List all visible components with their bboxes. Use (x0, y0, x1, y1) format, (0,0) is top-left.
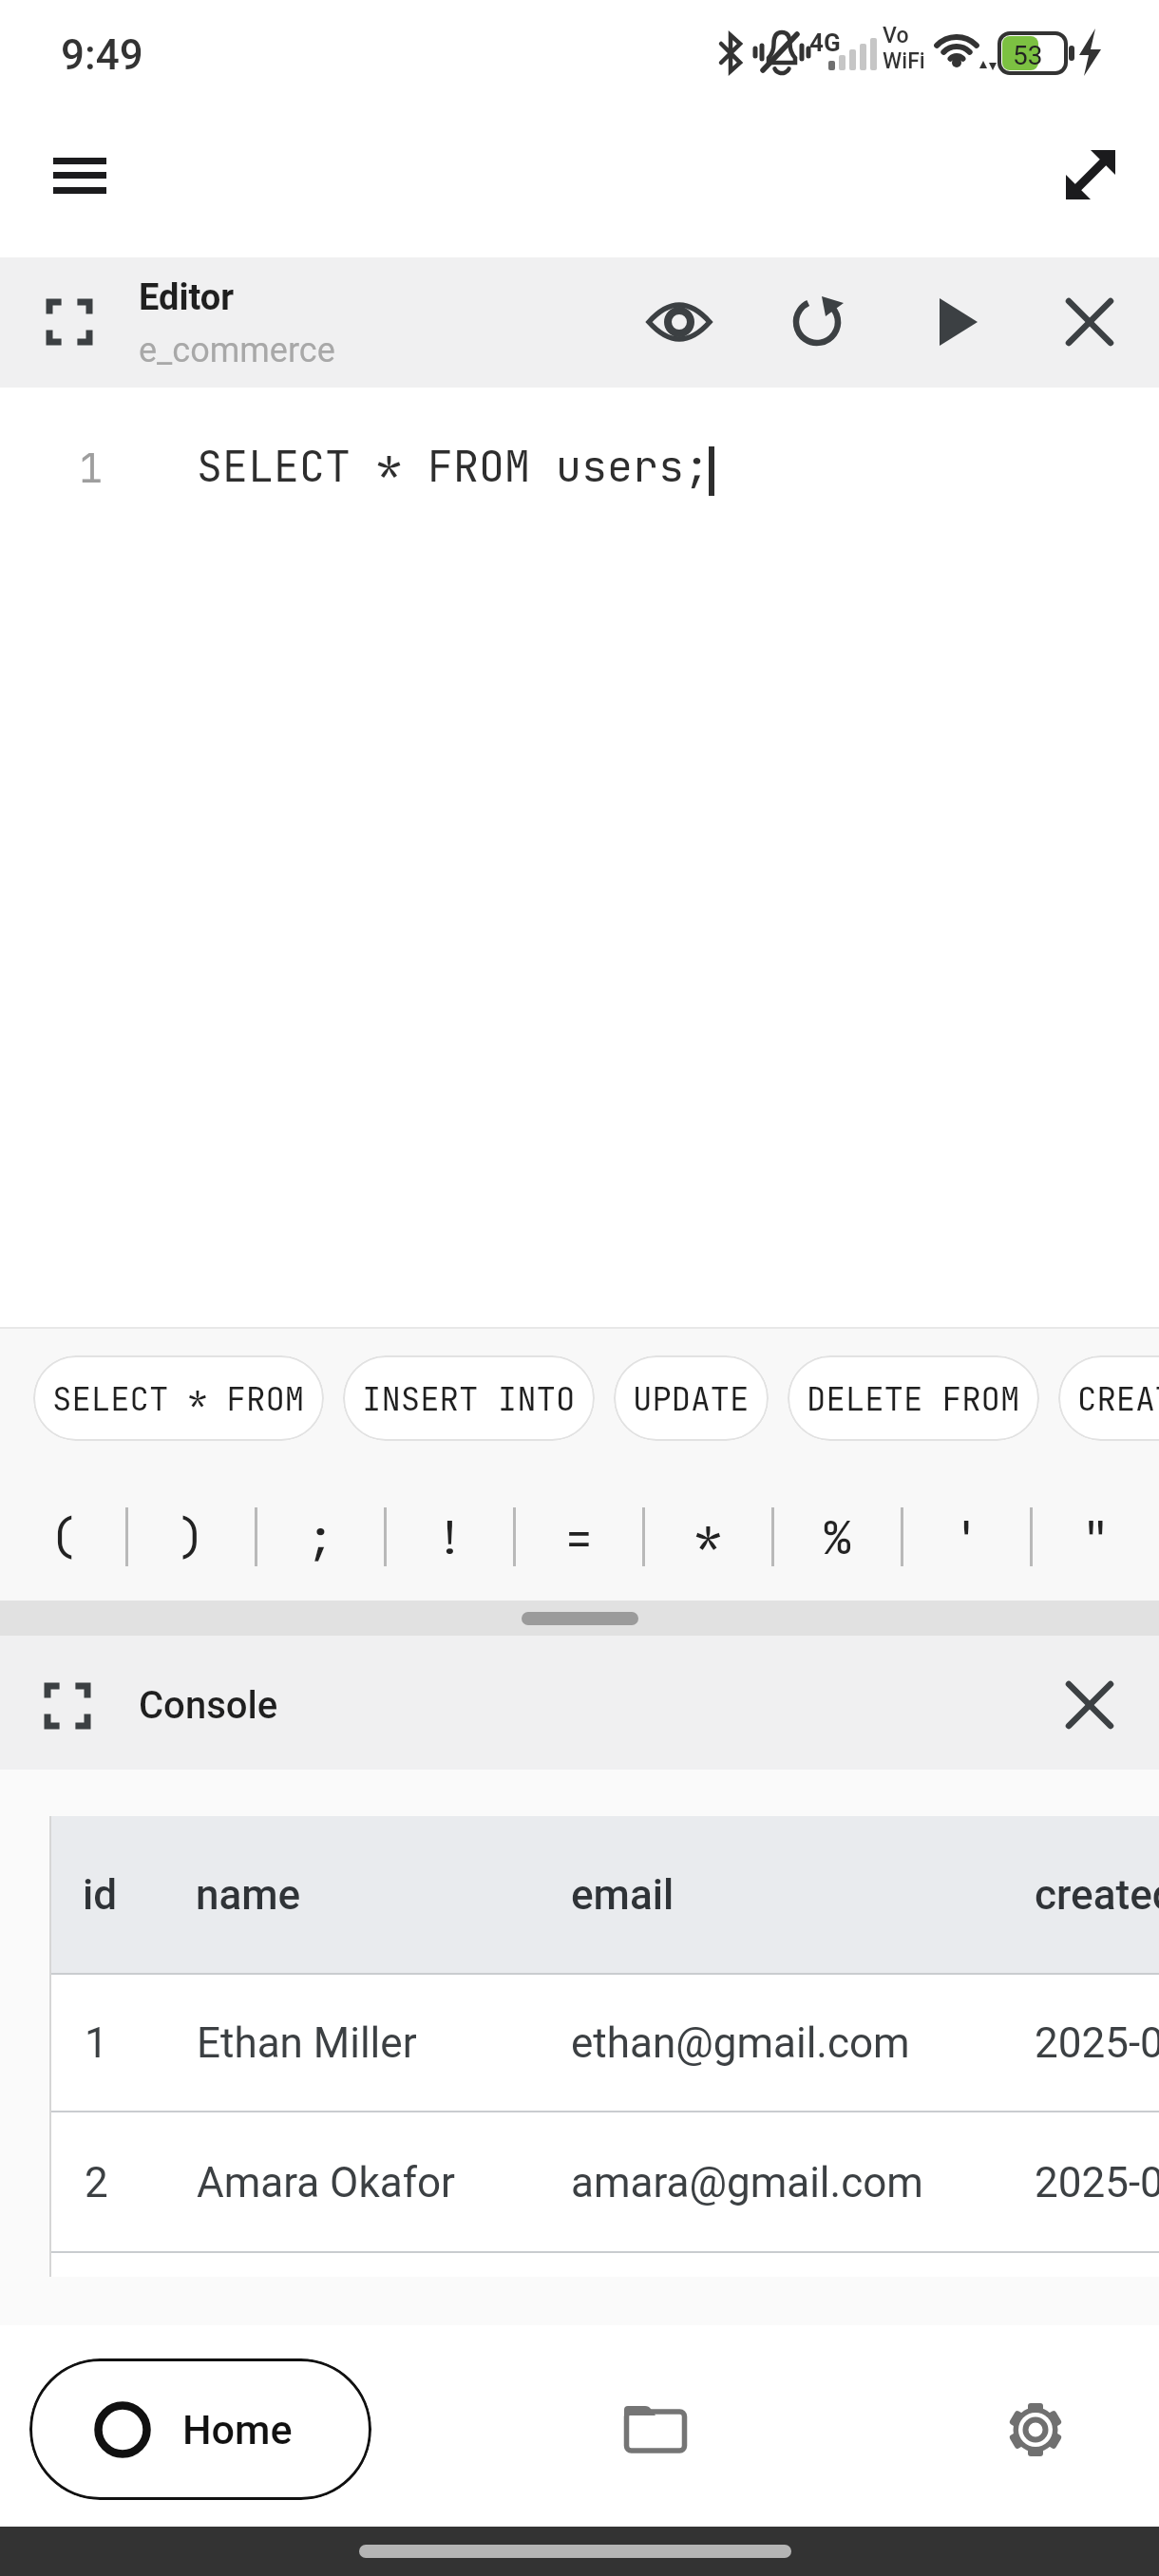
staticText: 2025-07-14 09:2 (1035, 2018, 1159, 2068)
button[interactable] (988, 2382, 1083, 2477)
staticText: ( (49, 1507, 77, 1567)
button[interactable]: DELETE FROM (788, 1355, 1039, 1441)
staticText: Ethan Miller (197, 2018, 417, 2068)
staticText: ' (953, 1507, 980, 1567)
button[interactable] (1054, 287, 1125, 357)
button[interactable]: ) (128, 1473, 255, 1601)
button[interactable]: 2 (51, 2112, 1159, 2251)
button[interactable] (922, 287, 993, 357)
button[interactable] (38, 1676, 97, 1735)
staticText: 9:49 (61, 30, 143, 80)
staticText: Amara Okafor (197, 2158, 455, 2207)
staticText: SELECT * FROM (52, 1377, 305, 1420)
staticText: 4G (809, 28, 841, 57)
staticText: amara@gmail.com (571, 2158, 923, 2207)
staticText: DELETE FROM (807, 1377, 1020, 1420)
button[interactable]: UPDATE (614, 1355, 769, 1441)
button[interactable] (40, 293, 99, 351)
button[interactable] (38, 142, 122, 211)
button[interactable]: SELECT * FROM (33, 1355, 324, 1441)
staticText: 53 (1013, 40, 1043, 71)
button[interactable] (1054, 1670, 1125, 1740)
button[interactable] (644, 287, 714, 357)
button[interactable]: 1 (51, 1975, 1159, 2111)
staticText: name (196, 1870, 301, 1920)
button[interactable]: ( (0, 1473, 125, 1601)
staticText: 2025-07-14 09:2 (1035, 2158, 1159, 2207)
staticText: ethan@gmail.com (571, 2018, 910, 2068)
button[interactable]: ' (903, 1473, 1030, 1601)
button[interactable]: INSERT INTO (343, 1355, 595, 1441)
button[interactable] (782, 287, 852, 357)
staticText: CREATE TABLE (1077, 1377, 1159, 1420)
staticText: 1 (85, 2018, 108, 2068)
button[interactable] (1045, 129, 1136, 220)
staticText: Console (139, 1683, 278, 1728)
staticText: id (83, 1870, 118, 1920)
button[interactable]: ; (257, 1473, 384, 1601)
button[interactable]: " (1033, 1473, 1159, 1601)
staticText: INSERT INTO (362, 1377, 576, 1420)
staticText: 2 (85, 2158, 108, 2207)
button[interactable]: = (516, 1473, 642, 1601)
staticText: created_at (1035, 1870, 1159, 1920)
button[interactable]: CREATE TABLE (1058, 1355, 1159, 1441)
button[interactable] (608, 2382, 703, 2477)
staticText: ) (178, 1507, 205, 1567)
staticText: Vo WiFi (883, 23, 925, 73)
staticText: ! (436, 1507, 464, 1567)
staticText: ; (307, 1507, 334, 1567)
staticText: " (1082, 1507, 1110, 1567)
button[interactable] (522, 1612, 638, 1625)
button[interactable]: ! (387, 1473, 513, 1601)
staticText: = (565, 1507, 593, 1567)
staticText: email (571, 1870, 674, 1920)
staticText: e_commerce (139, 331, 335, 370)
staticText: 1 (79, 442, 104, 494)
button[interactable]: Home (29, 2358, 371, 2500)
button[interactable]: * (645, 1473, 771, 1601)
staticText: Home (182, 2406, 293, 2453)
staticText: UPDATE (633, 1377, 750, 1420)
staticText: Editor (139, 276, 235, 319)
button[interactable]: % (774, 1473, 901, 1601)
staticText: * (694, 1507, 722, 1567)
staticText: SELECT * FROM users; (197, 438, 711, 494)
staticText: % (824, 1507, 851, 1567)
